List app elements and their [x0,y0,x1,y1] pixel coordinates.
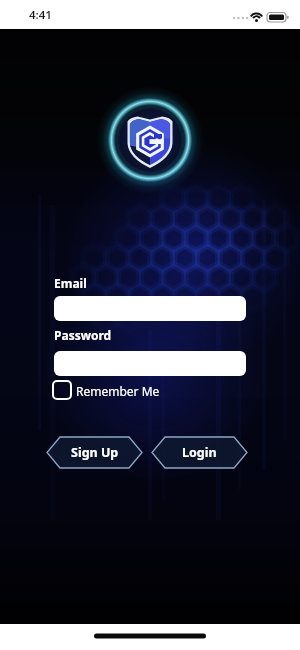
staticText: Remember Me [76,383,160,399]
staticText: 4:41 [29,7,52,23]
staticText: Password [54,327,112,343]
staticText: Email [54,275,87,291]
staticText: Sign Up [71,444,119,461]
staticText: Login [182,444,217,461]
